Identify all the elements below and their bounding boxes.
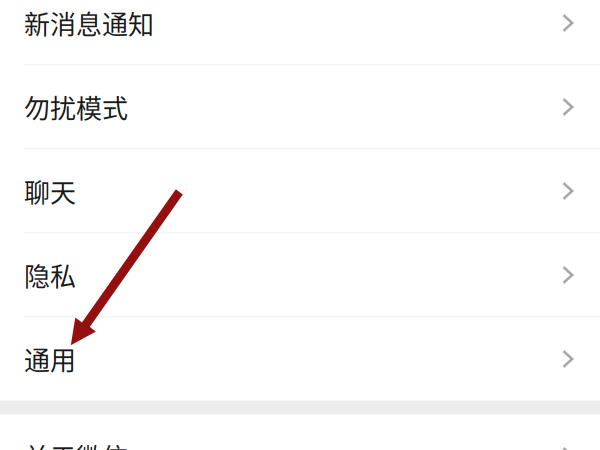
button[interactable]: 隐私 [0, 233, 600, 316]
button[interactable]: 新消息通知 [0, 0, 600, 64]
staticText: 勿扰模式 [24, 88, 128, 126]
button[interactable]: 勿扰模式 [0, 65, 600, 148]
staticText: 关于微信 [24, 437, 128, 450]
button[interactable]: 通用 [0, 317, 600, 400]
staticText: 通用 [24, 340, 76, 378]
staticText: 新消息通知 [24, 4, 154, 42]
staticText: 聊天 [24, 172, 76, 210]
button[interactable]: 关于微信 [0, 414, 600, 450]
staticText: 隐私 [24, 256, 76, 294]
button[interactable]: 聊天 [0, 149, 600, 232]
